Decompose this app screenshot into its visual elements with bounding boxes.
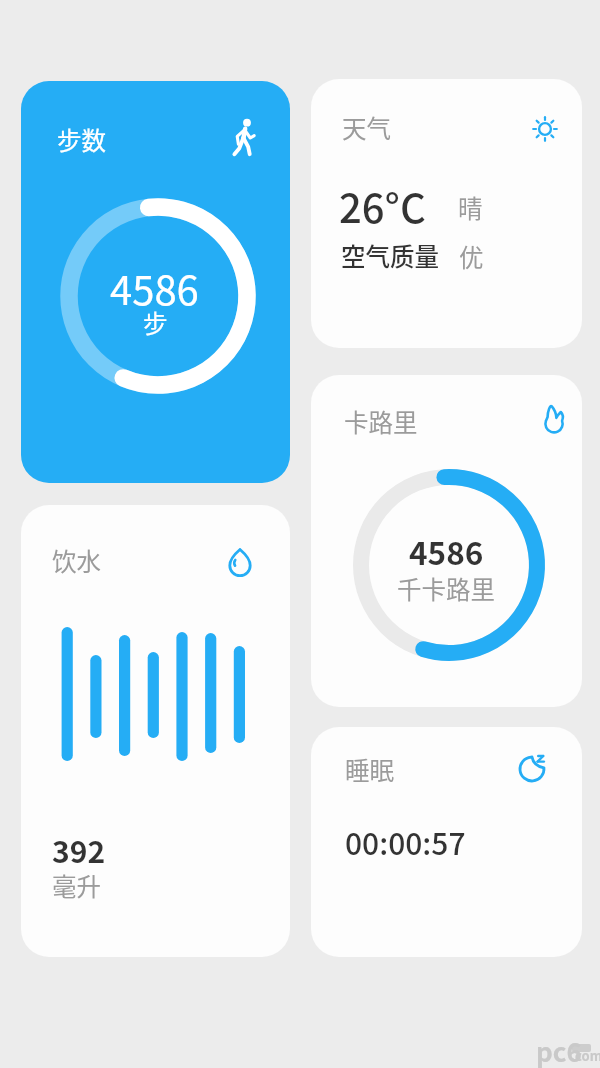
button[interactable] <box>311 79 582 348</box>
staticText: 步数 <box>57 122 106 157</box>
staticText: 天气 <box>342 110 391 145</box>
staticText: 392 <box>52 828 106 871</box>
button[interactable] <box>311 375 582 707</box>
staticText: 晴 <box>458 190 483 225</box>
staticText: .com <box>571 1046 600 1065</box>
staticText: pc6 <box>536 1032 582 1068</box>
staticText: 26°C <box>339 177 426 235</box>
staticText: 步 <box>143 305 168 340</box>
button[interactable] <box>21 81 290 483</box>
staticText: 4586 <box>110 259 199 317</box>
staticText: 优 <box>459 239 484 274</box>
staticText: 千卡路里 <box>397 571 495 606</box>
button[interactable] <box>311 727 582 957</box>
staticText: 4586 <box>409 528 484 574</box>
staticText: 空气质量 <box>341 238 439 273</box>
staticText: 毫升 <box>52 868 101 903</box>
staticText: 睡眠 <box>345 752 394 787</box>
staticText: 卡路里 <box>344 404 418 439</box>
staticText: 饮水 <box>52 543 101 578</box>
button[interactable] <box>21 505 290 957</box>
staticText: 00:00:57 <box>345 820 466 863</box>
